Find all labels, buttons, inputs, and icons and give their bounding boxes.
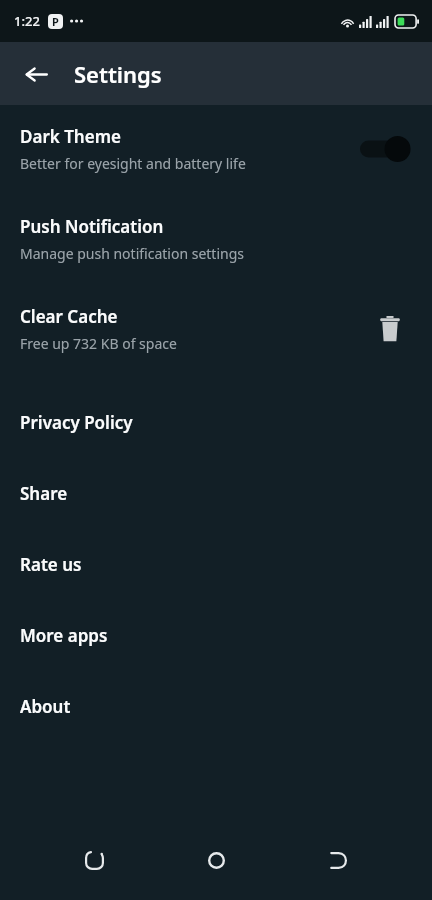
button[interactable]: Privacy Policy <box>0 387 432 458</box>
button[interactable]: More apps <box>0 600 432 671</box>
staticText: P <box>52 14 59 29</box>
button[interactable]: Dark Theme toggle <box>360 134 412 164</box>
staticText: Share <box>20 482 68 505</box>
button[interactable]: Clear Cache <box>368 307 412 351</box>
staticText: Free up 732 KB of space <box>20 334 177 353</box>
staticText: 1:22 <box>14 12 40 30</box>
button[interactable]: Share <box>0 458 432 529</box>
staticText: Push Notification <box>20 215 164 238</box>
button[interactable]: Clear Cache <box>0 302 432 356</box>
staticText: About <box>20 695 71 718</box>
staticText: Privacy Policy <box>20 411 133 434</box>
button[interactable]: Push Notification <box>0 212 432 266</box>
button[interactable]: About <box>0 671 432 742</box>
staticText: More apps <box>20 624 108 647</box>
button[interactable]: Home <box>188 832 244 888</box>
staticText: Clear Cache <box>20 305 118 328</box>
button[interactable]: Back <box>310 832 366 888</box>
button[interactable]: Recents <box>66 832 122 888</box>
staticText: Better for eyesight and battery life <box>20 154 246 173</box>
staticText: Dark Theme <box>20 125 121 148</box>
staticText: Rate us <box>20 553 82 576</box>
button[interactable]: Dark Theme <box>0 122 432 176</box>
staticText: Settings <box>74 59 162 89</box>
staticText: Manage push notification settings <box>20 244 244 263</box>
button[interactable]: Rate us <box>0 529 432 600</box>
button[interactable]: Back <box>14 52 58 96</box>
